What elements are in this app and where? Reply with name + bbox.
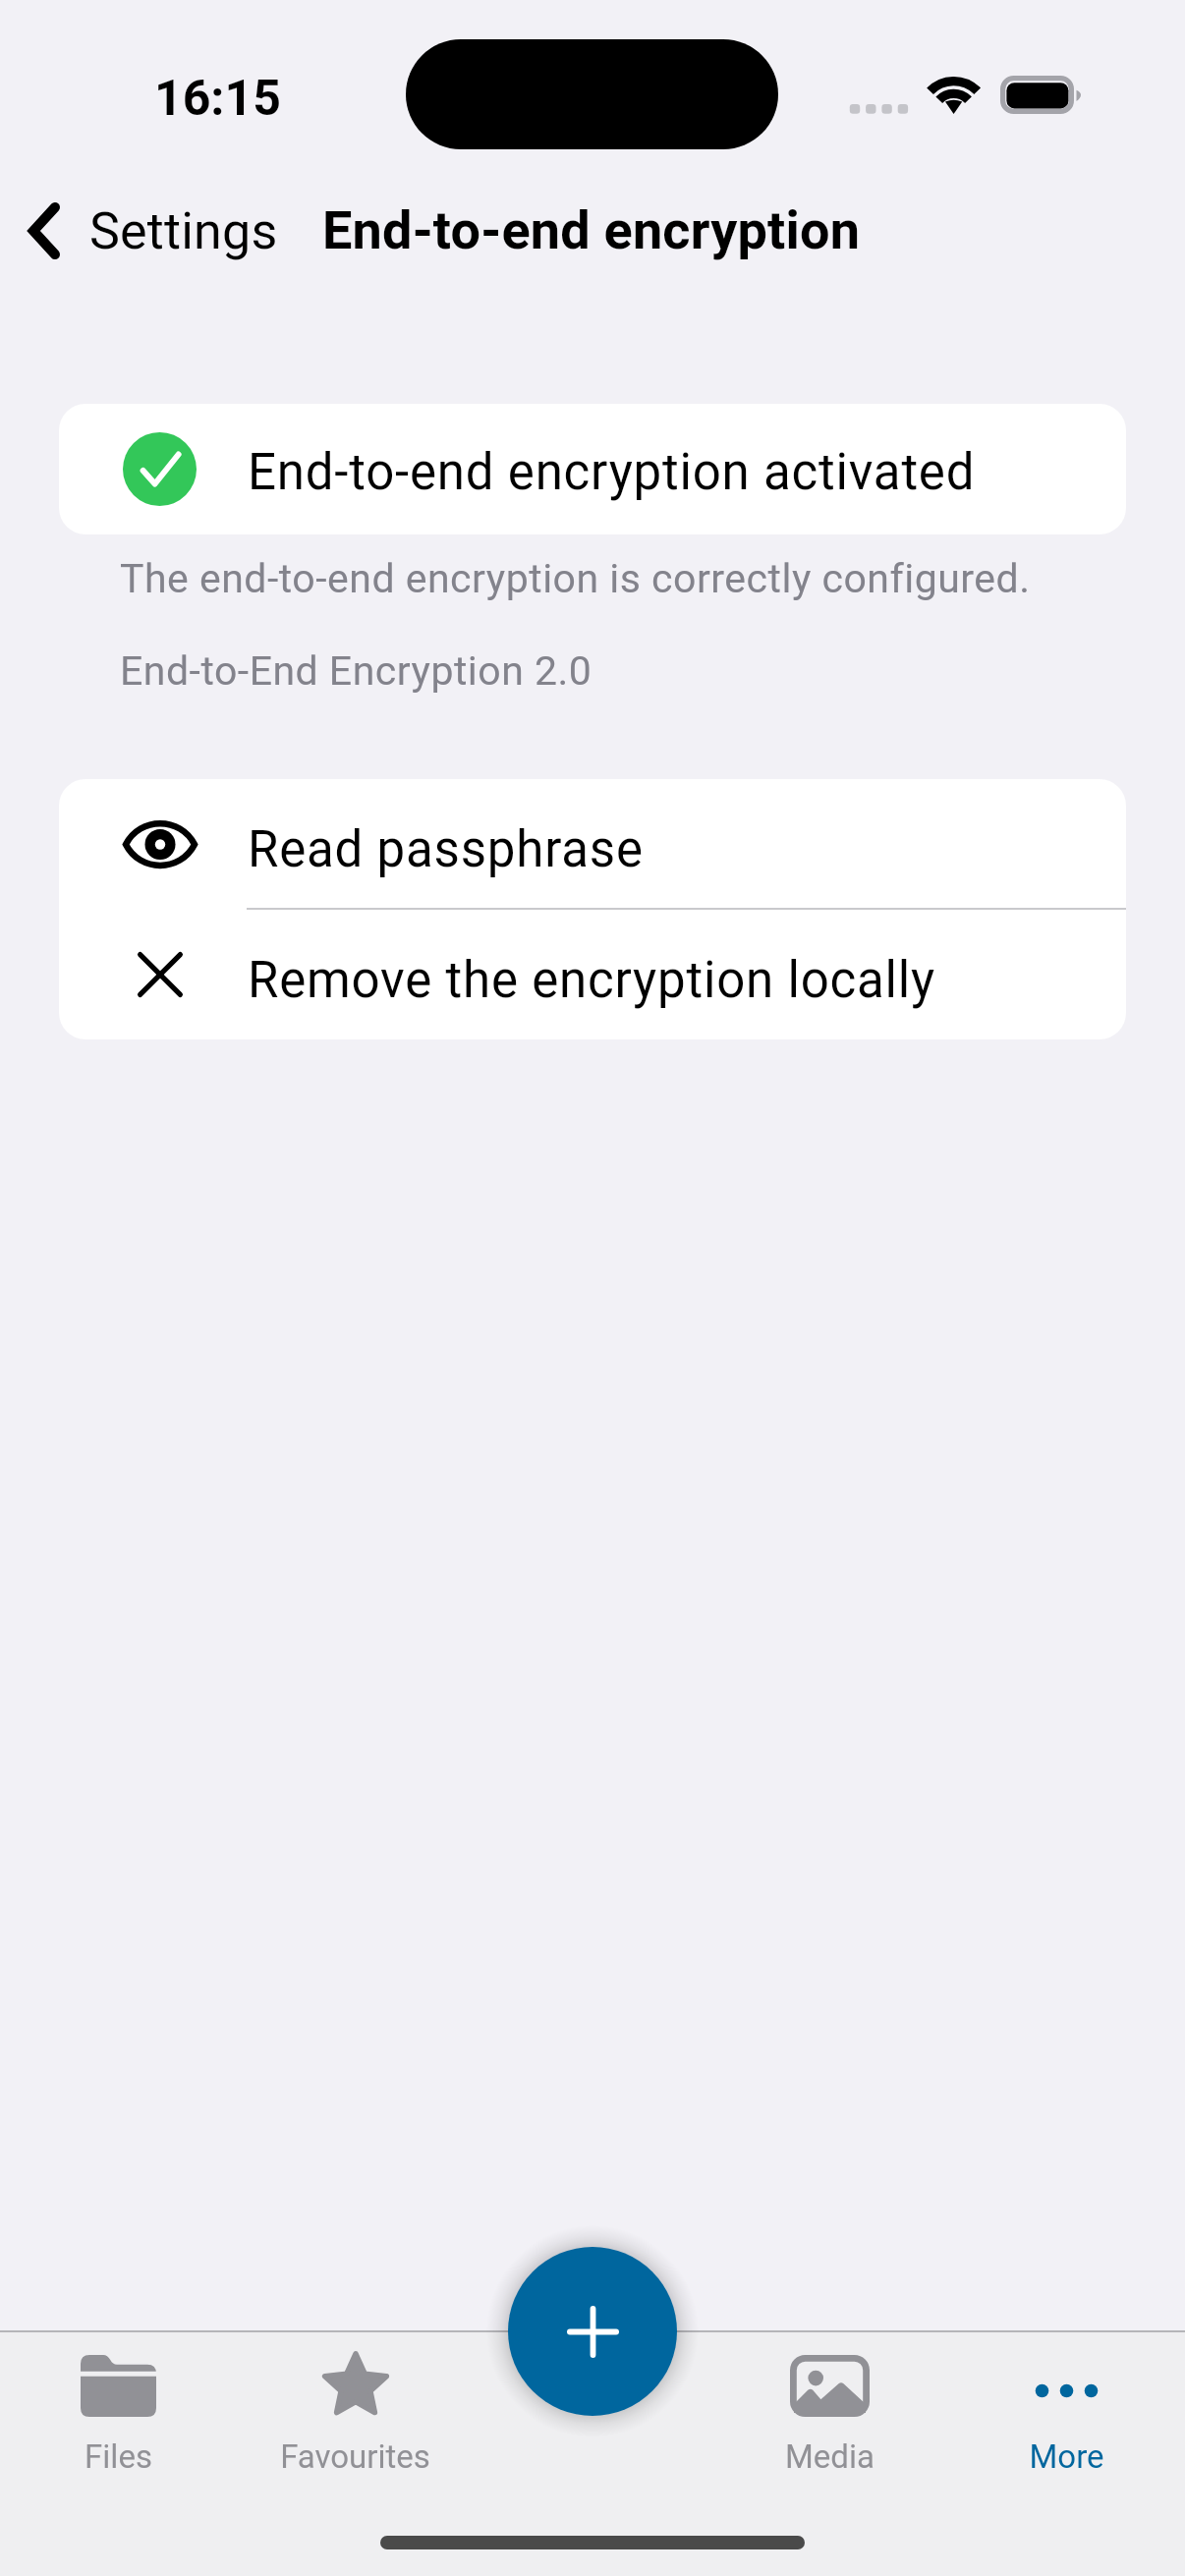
other: Cellular signal bbox=[849, 104, 908, 115]
button[interactable]: Back to Settings bbox=[0, 191, 278, 271]
button[interactable]: Favourites bbox=[237, 2351, 474, 2479]
button[interactable]: Add bbox=[508, 2247, 677, 2416]
button[interactable]: End-to-end encryption activated bbox=[59, 404, 1126, 534]
button[interactable]: Remove the encryption locally bbox=[59, 910, 1126, 1039]
staticText: Favourites bbox=[280, 2437, 430, 2476]
staticText: End-to-End Encryption 2.0 bbox=[120, 647, 592, 695]
other: Wi-Fi bbox=[927, 75, 982, 116]
staticText: More bbox=[1029, 2437, 1104, 2476]
button[interactable]: More bbox=[948, 2351, 1185, 2479]
button[interactable]: Read passphrase bbox=[59, 779, 1126, 909]
other: Battery bbox=[1000, 76, 1083, 115]
staticText: End-to-end encryption bbox=[322, 199, 861, 261]
staticText: 16:15 bbox=[154, 70, 281, 128]
staticText: Files bbox=[85, 2437, 152, 2476]
staticText: Media bbox=[785, 2437, 875, 2476]
staticText: Remove the encryption locally bbox=[248, 951, 935, 1010]
staticText: The end-to-end encryption is correctly c… bbox=[120, 555, 1031, 602]
staticText: Settings bbox=[89, 201, 278, 261]
staticText: Read passphrase bbox=[248, 820, 644, 879]
staticText: End-to-end encryption activated bbox=[248, 443, 976, 502]
button[interactable]: Files bbox=[0, 2351, 237, 2479]
button[interactable]: Media bbox=[711, 2351, 948, 2479]
